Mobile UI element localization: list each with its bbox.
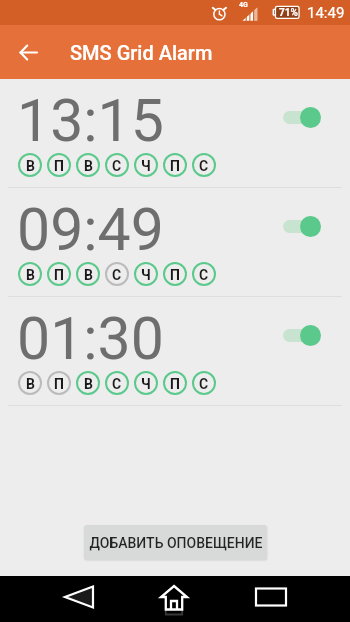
button[interactable]: С — [105, 262, 129, 286]
button[interactable]: ДОБАВИТЬ ОПОВЕЩЕНИЕ — [84, 525, 267, 560]
staticText: С — [199, 267, 209, 283]
button[interactable]: П — [163, 262, 187, 286]
button[interactable]: Recents — [249, 576, 293, 622]
staticText: П — [54, 158, 64, 174]
staticText: 4G — [239, 1, 248, 9]
button[interactable]: С — [192, 153, 216, 177]
staticText: Ч — [141, 267, 151, 283]
staticText: В — [84, 158, 93, 174]
button[interactable]: 01:30 — [0, 297, 350, 405]
staticText: С — [112, 158, 122, 174]
button[interactable]: В — [18, 153, 42, 177]
button[interactable]: С — [192, 262, 216, 286]
staticText: 71% — [279, 7, 298, 19]
staticText: С — [199, 376, 209, 392]
button[interactable]: В — [76, 262, 100, 286]
staticText: В — [84, 376, 93, 392]
staticText: 01:30 — [17, 304, 164, 373]
button[interactable]: 09:49 — [0, 188, 350, 296]
button[interactable]: В — [76, 153, 100, 177]
staticText: ДОБАВИТЬ ОПОВЕЩЕНИЕ — [89, 535, 263, 551]
staticText: 14:49 — [307, 4, 345, 22]
button[interactable]: С — [105, 153, 129, 177]
staticText: П — [170, 158, 180, 174]
staticText: Ч — [141, 376, 151, 392]
button[interactable]: В — [18, 371, 42, 395]
staticText: SMS Grid Alarm — [70, 41, 213, 64]
button[interactable]: С — [105, 371, 129, 395]
button[interactable]: П — [47, 262, 71, 286]
button[interactable]: П — [47, 371, 71, 395]
staticText: П — [170, 376, 180, 392]
button[interactable]: Ч — [134, 371, 158, 395]
staticText: П — [54, 267, 64, 283]
button[interactable]: С — [192, 371, 216, 395]
staticText: С — [112, 267, 122, 283]
button[interactable]: П — [47, 153, 71, 177]
staticText: С — [199, 158, 209, 174]
staticText: Ч — [141, 158, 151, 174]
staticText: 13:15 — [17, 86, 164, 155]
button[interactable]: Back — [57, 576, 101, 622]
button[interactable]: Ч — [134, 262, 158, 286]
button[interactable]: П — [163, 371, 187, 395]
staticText: П — [170, 267, 180, 283]
button[interactable]: П — [163, 153, 187, 177]
button[interactable]: Toggle alarm — [283, 325, 321, 346]
button[interactable]: Toggle alarm — [283, 107, 321, 128]
staticText: В — [26, 267, 35, 283]
staticText: В — [84, 267, 93, 283]
button[interactable]: Toggle alarm — [283, 216, 321, 237]
button[interactable]: Back — [12, 36, 44, 68]
staticText: В — [26, 376, 35, 392]
staticText: 09:49 — [17, 195, 164, 264]
button[interactable]: 13:15 — [0, 79, 350, 187]
button[interactable]: Ч — [134, 153, 158, 177]
staticText: С — [112, 376, 122, 392]
staticText: П — [54, 376, 64, 392]
button[interactable]: Home — [152, 576, 196, 622]
button[interactable]: В — [18, 262, 42, 286]
button[interactable]: В — [76, 371, 100, 395]
staticText: В — [26, 158, 35, 174]
